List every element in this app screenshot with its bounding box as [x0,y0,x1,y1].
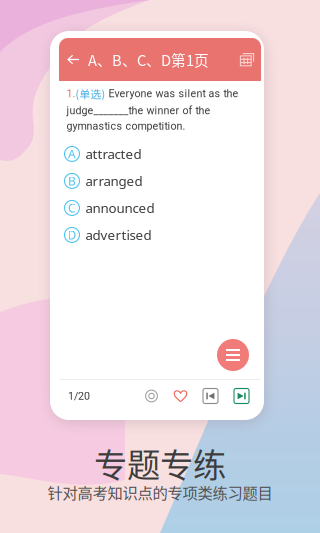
staticText: Everyone was silent as the [105,87,238,100]
staticText: 1/20 [68,390,90,402]
staticText: A [68,146,76,162]
button[interactable]: C [64,194,261,221]
button[interactable]: Favourite [171,387,190,405]
button[interactable]: Previous [200,385,221,406]
button[interactable]: Print [237,49,257,69]
button[interactable]: Show answer [142,386,161,405]
button[interactable]: Back [63,49,84,69]
staticText: judge_______the winner of the [66,104,210,117]
staticText: announced [85,199,154,217]
staticText: D [67,227,76,243]
button[interactable]: A [64,140,261,167]
button[interactable]: D [64,221,261,248]
button[interactable]: Next [231,385,252,406]
button[interactable]: B [64,167,261,194]
staticText: A、B、C、D第1页 [88,49,209,70]
staticText: 专题专练 [94,439,226,487]
staticText: 1. [66,87,75,100]
staticText: attracted [85,145,141,163]
staticText: C [68,200,76,216]
staticText: (单选) [75,86,105,101]
staticText: B [68,173,76,189]
staticText: 针对高考知识点的专项类练习题目 [47,481,272,503]
button[interactable]: Menu [217,339,249,371]
staticText: arranged [85,172,142,190]
staticText: advertised [85,226,151,244]
staticText: gymnastics competition. [66,120,185,132]
